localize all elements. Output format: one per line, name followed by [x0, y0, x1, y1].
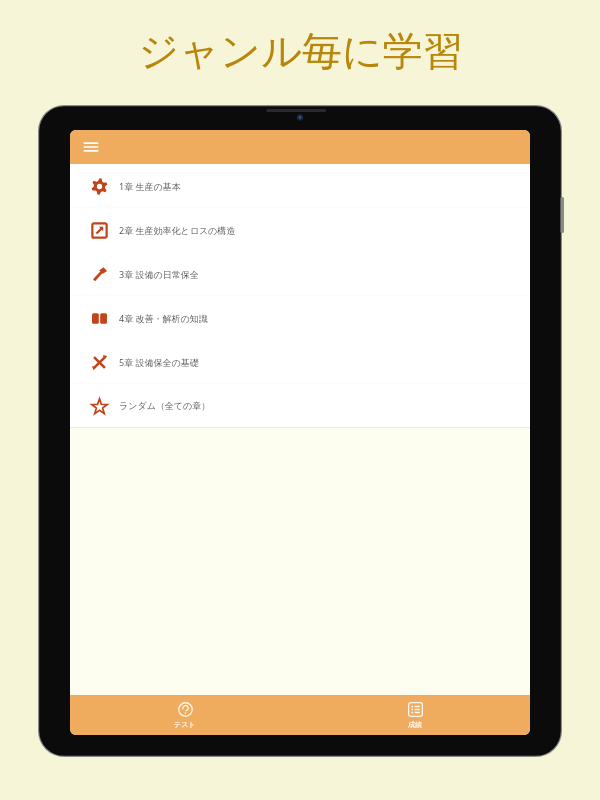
button[interactable]: 3章 設備の日常保全: [70, 252, 530, 295]
button[interactable]: 5章 設備保全の基礎: [70, 340, 530, 383]
button[interactable]: ランダム（全ての章）: [70, 384, 530, 427]
staticText: 5章 設備保全の基礎: [119, 356, 199, 368]
staticText: 4章 改善・解析の知識: [119, 312, 208, 324]
staticText: ランダム（全ての章）: [119, 400, 211, 411]
button[interactable]: テスト: [70, 695, 300, 735]
button[interactable]: 2章 生産効率化とロスの構造: [70, 208, 530, 251]
staticText: 成績: [408, 720, 422, 729]
staticText: 3章 設備の日常保全: [119, 268, 199, 280]
button[interactable]: 成績: [300, 695, 530, 735]
staticText: 1章 生産の基本: [119, 180, 181, 192]
button[interactable]: 4章 改善・解析の知識: [70, 296, 530, 339]
staticText: ジャンル毎に学習: [138, 26, 463, 76]
button[interactable]: Menu: [76, 132, 106, 162]
staticText: テスト: [174, 720, 196, 729]
button[interactable]: 1章 生産の基本: [70, 164, 530, 207]
staticText: 2章 生産効率化とロスの構造: [119, 224, 236, 236]
